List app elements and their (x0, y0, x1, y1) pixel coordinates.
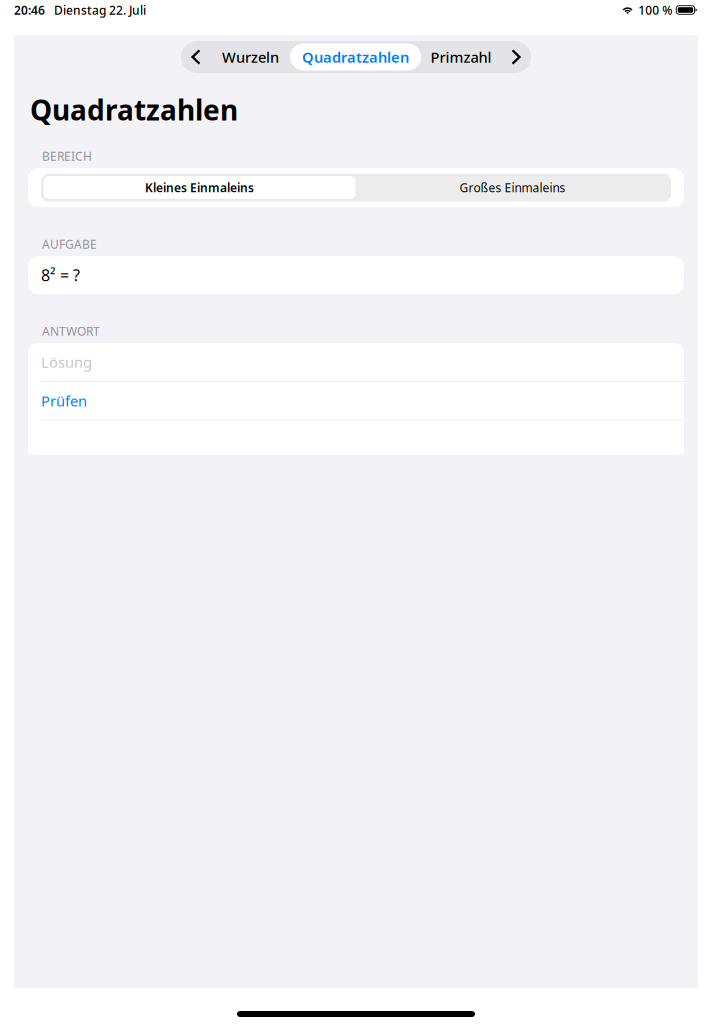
staticText: BEREICH (42, 148, 92, 164)
staticText: Primzahl (430, 47, 491, 67)
staticText: ANTWORT (42, 323, 100, 339)
button[interactable]: Nächstes Thema (501, 41, 531, 73)
button[interactable]: Lösung (28, 343, 684, 381)
staticText: 8² = ? (41, 264, 80, 286)
button[interactable]: Wurzeln (211, 43, 290, 70)
button[interactable]: Primzahl (421, 43, 501, 70)
button[interactable]: Prüfen (28, 382, 684, 420)
button[interactable]: Kleines Einmaleins (43, 176, 356, 200)
button[interactable]: Vorheriges Thema (181, 41, 211, 73)
staticText: Quadratzahlen (302, 47, 409, 67)
staticText: Prüfen (41, 391, 87, 411)
button[interactable]: Quadratzahlen (290, 43, 421, 70)
staticText: Dienstag 22. Juli (54, 2, 146, 18)
staticText: Großes Einmaleins (459, 180, 565, 196)
button[interactable]: Großes Einmaleins (356, 176, 669, 200)
staticText: AUFGABE (42, 236, 97, 252)
staticText: Quadratzahlen (30, 91, 238, 128)
staticText: 100 % (638, 2, 672, 18)
staticText: Kleines Einmaleins (145, 180, 254, 196)
staticText: Wurzeln (222, 47, 279, 67)
staticText: 20:46 (14, 2, 45, 18)
staticText: Lösung (41, 352, 92, 372)
